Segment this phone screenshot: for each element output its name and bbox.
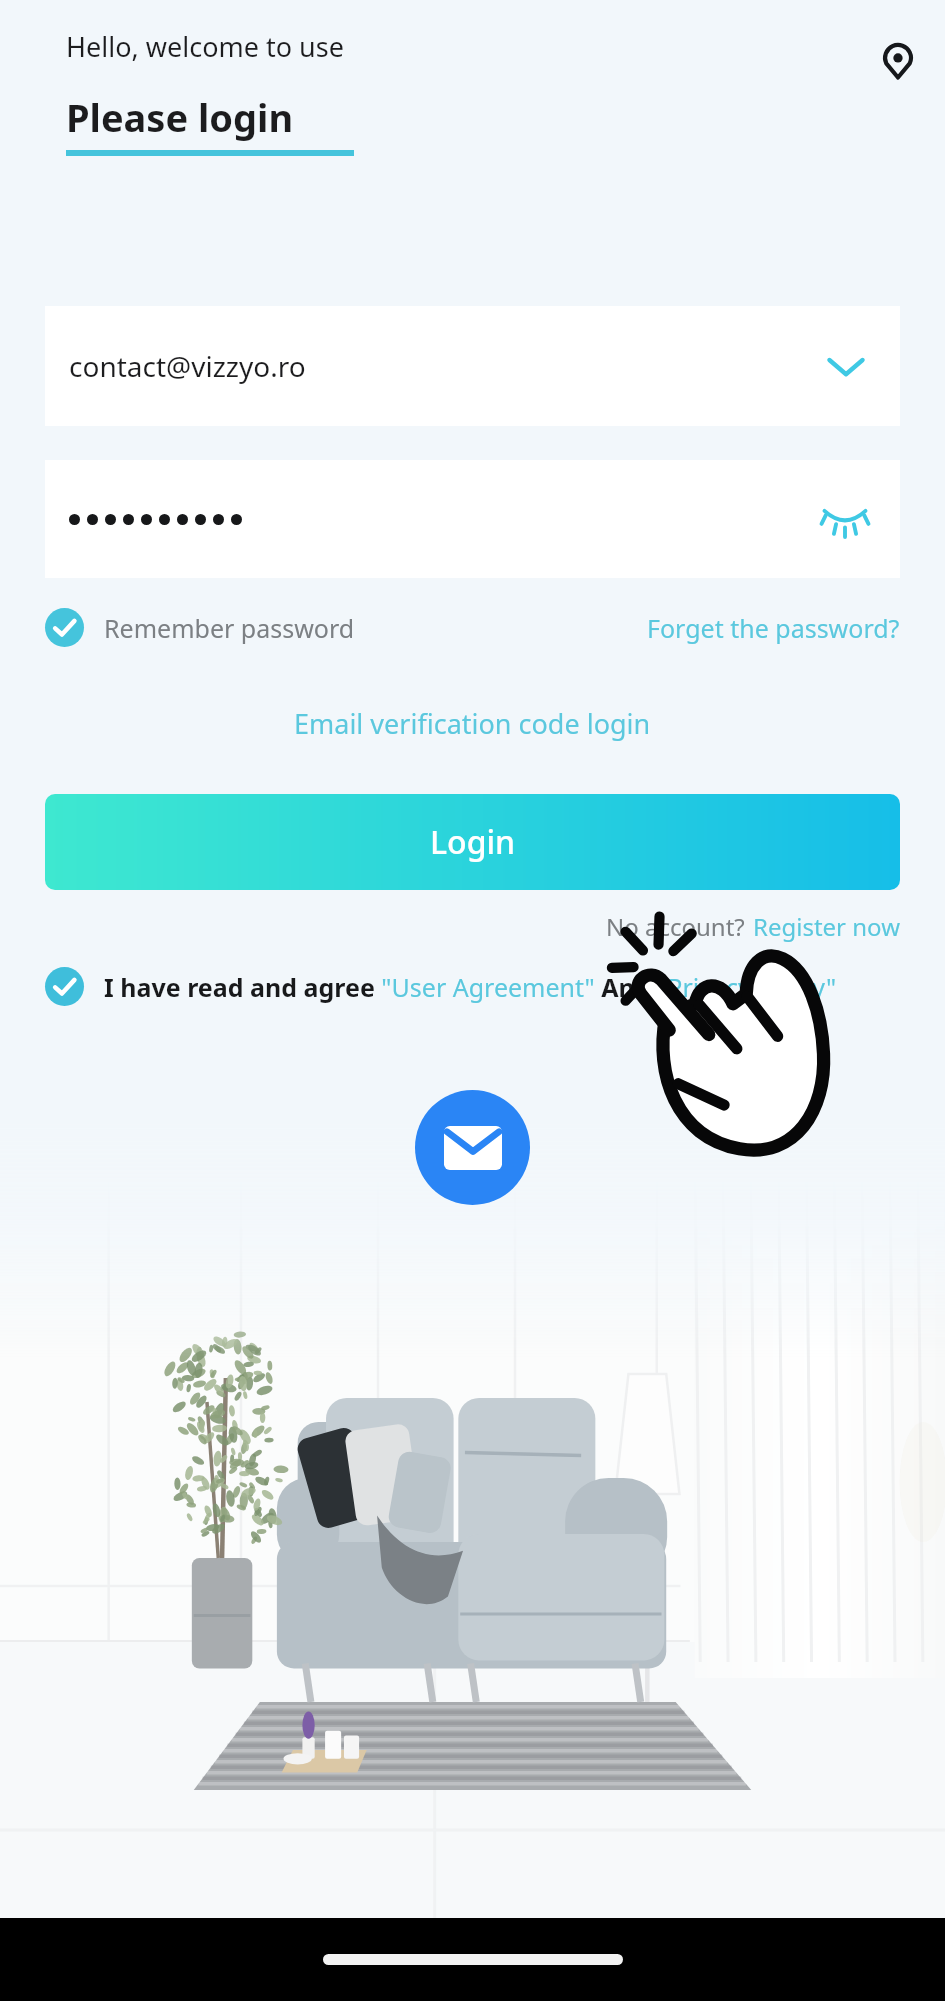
button[interactable]: Remember password (45, 600, 355, 655)
button[interactable]: Show password (816, 490, 874, 548)
staticText: Please login (66, 91, 294, 143)
staticText: contact@vizzyo.ro (69, 347, 818, 385)
button[interactable]: Login with email (415, 1090, 530, 1205)
button[interactable]: Choose account (818, 338, 874, 394)
button[interactable]: Location (871, 34, 925, 88)
staticText: I have read and agree "User Agreement" A… (104, 970, 837, 1004)
button[interactable]: Show password (45, 460, 900, 578)
staticText: Hello, welcome to use (66, 28, 344, 65)
staticText: Forget the password? (647, 611, 900, 645)
button[interactable]: No account? (606, 910, 900, 943)
button[interactable]: Forget the password? (647, 603, 900, 653)
staticText: Login (430, 820, 516, 864)
button[interactable]: Email verification code login (280, 699, 665, 748)
staticText: Remember password (104, 611, 355, 645)
staticText: Register now (753, 910, 900, 943)
staticText: Email verification code login (294, 705, 651, 742)
button[interactable]: I have read and agree "User Agreement" A… (45, 967, 900, 1006)
button[interactable]: Login (45, 794, 900, 890)
button[interactable]: contact@vizzyo.ro (45, 306, 900, 426)
staticText: No account? (606, 910, 745, 943)
